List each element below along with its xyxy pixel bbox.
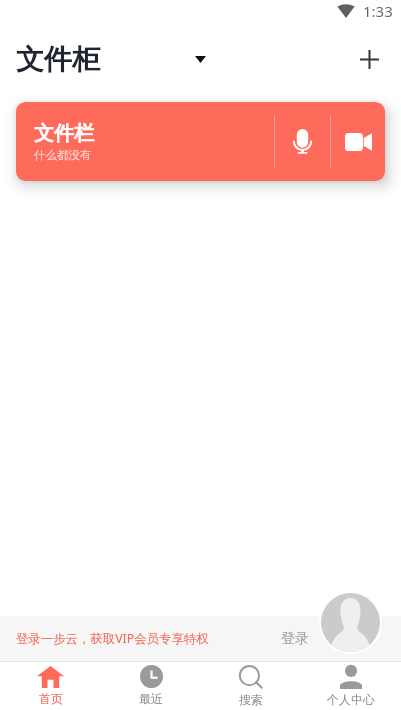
button[interactable]: 首页 — [0, 661, 101, 710]
staticText: 什么都没有 — [34, 148, 92, 162]
button[interactable]: 搜索 — [201, 661, 301, 710]
button[interactable]: 文件栏 — [16, 102, 385, 181]
button[interactable]: 登录 — [268, 616, 322, 661]
button[interactable]: 个人中心 — [301, 661, 401, 710]
button[interactable]: Video record — [331, 102, 385, 181]
staticText: 文件栏 — [34, 121, 94, 146]
staticText: 最近 — [139, 691, 163, 706]
staticText: 首页 — [39, 691, 63, 706]
staticText: 1:33 — [363, 1, 393, 21]
button[interactable]: Add — [347, 37, 391, 81]
staticText: 登录一步云，获取VIP会员专享特权 — [16, 630, 209, 647]
staticText: 搜索 — [239, 692, 263, 707]
staticText: 登录 — [281, 630, 309, 648]
button[interactable]: Profile — [321, 593, 380, 652]
staticText: 个人中心 — [327, 692, 375, 707]
button[interactable]: 文件柜 — [0, 38, 214, 80]
button[interactable]: 登录一步云，获取VIP会员专享特权 — [0, 616, 401, 661]
button[interactable]: 最近 — [101, 661, 201, 710]
staticText: 文件柜 — [16, 42, 100, 77]
button[interactable]: Voice record — [275, 102, 330, 181]
